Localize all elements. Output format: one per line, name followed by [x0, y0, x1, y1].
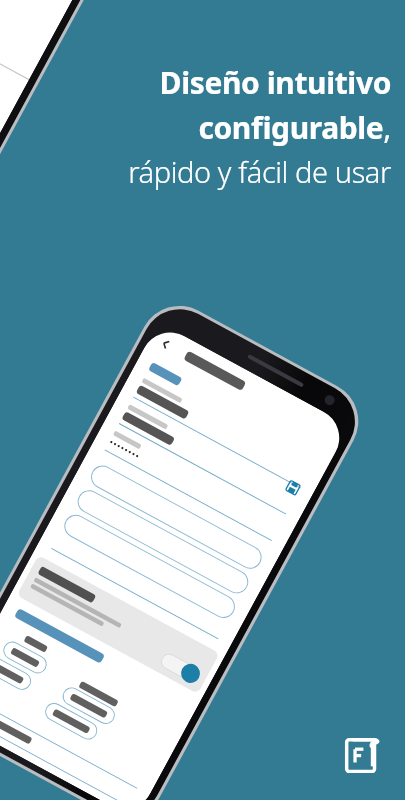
staticText: rápido y fácil de usar	[128, 152, 391, 191]
button[interactable]: Facturador logo	[339, 732, 387, 780]
staticText: configurable,	[198, 107, 391, 148]
staticText: Diseño intuitivo	[159, 62, 391, 103]
